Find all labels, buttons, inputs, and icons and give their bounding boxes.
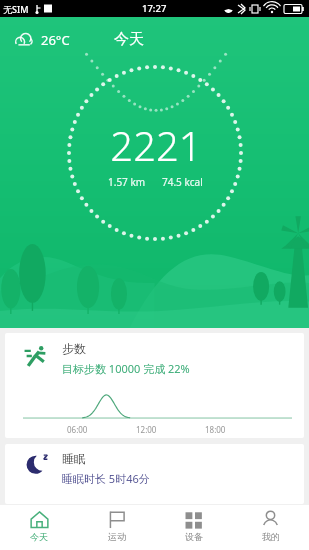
staticText: 06:00 [67, 424, 88, 435]
button[interactable]: 运动 [78, 505, 155, 550]
staticText: 26°C [41, 31, 70, 49]
button[interactable]: 今天 [114, 30, 144, 49]
button[interactable]: 设备 [155, 505, 232, 550]
staticText: 12:00 [136, 424, 157, 435]
button[interactable]: 今天 [0, 505, 78, 550]
staticText: 目标步数 10000 完成 22% [62, 361, 190, 376]
staticText: 运动 [108, 531, 126, 542]
staticText: 步数 [62, 341, 86, 356]
staticText: 74.5 kcal [162, 175, 203, 189]
button[interactable]: 26°C [12, 27, 72, 53]
staticText: 18:00 [205, 424, 226, 435]
staticText: 17:27 [142, 2, 167, 15]
staticText: 2221 [110, 118, 202, 172]
staticText: 今天 [30, 531, 48, 542]
button[interactable]: 步数 [5, 333, 304, 438]
staticText: 睡眠 [62, 451, 86, 466]
staticText: 我的 [262, 531, 280, 542]
staticText: 1.57 km [108, 175, 146, 189]
button[interactable]: 我的 [232, 505, 309, 550]
staticText: 无SIM [3, 3, 29, 15]
button[interactable]: 睡眠 [5, 444, 304, 504]
staticText: 睡眠时长 5时46分 [62, 471, 150, 486]
staticText: 设备 [185, 531, 203, 542]
